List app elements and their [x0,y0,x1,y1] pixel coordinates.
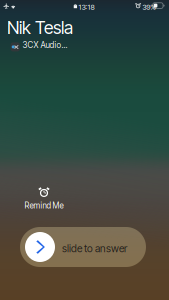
button[interactable]: Remind Me [16,184,72,214]
staticText: 39% [142,2,156,11]
staticText: slide to answer [62,242,127,255]
button[interactable]: slide to answer [20,227,146,267]
staticText: Nik Tesla [7,17,73,38]
staticText: 13:18 [78,2,94,11]
staticText: 3CX Audio... [23,40,68,50]
staticText: Remind Me [24,201,63,210]
